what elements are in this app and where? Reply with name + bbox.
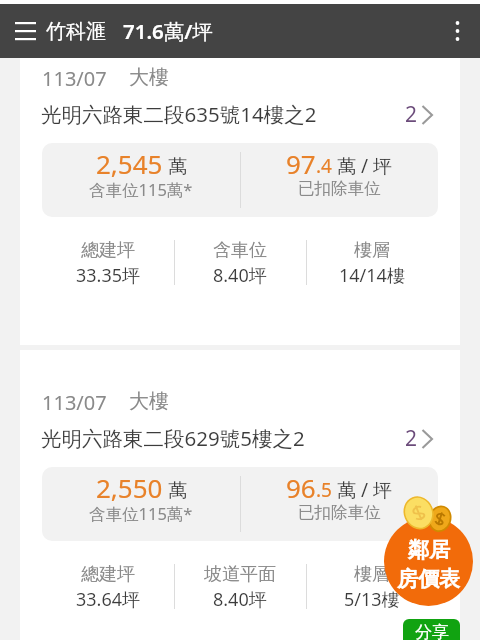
staticText: 房價表 (397, 566, 460, 592)
staticText: 113/07 (42, 65, 107, 92)
staticText: 96 (286, 470, 316, 505)
staticText: 萬 / 坪 (337, 477, 392, 503)
staticText: .5 (316, 477, 332, 503)
staticText: 2,545 (96, 146, 163, 181)
staticText: 33.64坪 (76, 587, 141, 612)
staticText: .4 (316, 153, 332, 179)
staticText: 竹科滙 (46, 19, 106, 44)
button[interactable]: 鄰居房價表 (384, 517, 473, 606)
button[interactable]: 分享 (403, 619, 460, 640)
staticText: 萬 (168, 479, 187, 503)
staticText: 8.40坪 (213, 263, 267, 288)
staticText: 8.40坪 (213, 587, 267, 612)
staticText: 已扣除車位 (298, 502, 381, 523)
staticText: 鄰居 (408, 537, 450, 563)
staticText: 含車位 (213, 239, 267, 262)
staticText: 樓層 (354, 563, 390, 586)
staticText: 113/07 (42, 389, 107, 416)
staticText: 總建坪 (81, 239, 135, 262)
staticText: 大樓 (129, 389, 169, 414)
staticText: 大樓 (129, 65, 169, 90)
staticText: 光明六路東二段635號14樓之2 (41, 100, 317, 128)
staticText: 萬 / 坪 (337, 153, 392, 179)
staticText: 樓層 (354, 239, 390, 262)
staticText: 分享 (415, 622, 449, 640)
staticText: 2 (405, 100, 418, 129)
button[interactable]: More options (434, 4, 480, 58)
staticText: 已扣除車位 (298, 178, 381, 199)
staticText: 5/13樓 (344, 587, 400, 612)
staticText: 14/14樓 (339, 263, 405, 288)
staticText: 光明六路東二段629號5樓之2 (41, 424, 305, 452)
staticText: 總建坪 (81, 563, 135, 586)
staticText: 2 (405, 424, 418, 453)
staticText: 含車位115萬* (89, 502, 193, 525)
staticText: 坡道平面 (204, 563, 276, 586)
staticText: 萬 (168, 155, 187, 179)
staticText: 含車位115萬* (89, 178, 193, 201)
staticText: 71.6萬/坪 (123, 17, 214, 45)
staticText: 97 (286, 146, 316, 181)
button[interactable]: Menu (4, 4, 46, 58)
staticText: 33.35坪 (76, 263, 141, 288)
staticText: 2,550 (96, 470, 163, 505)
